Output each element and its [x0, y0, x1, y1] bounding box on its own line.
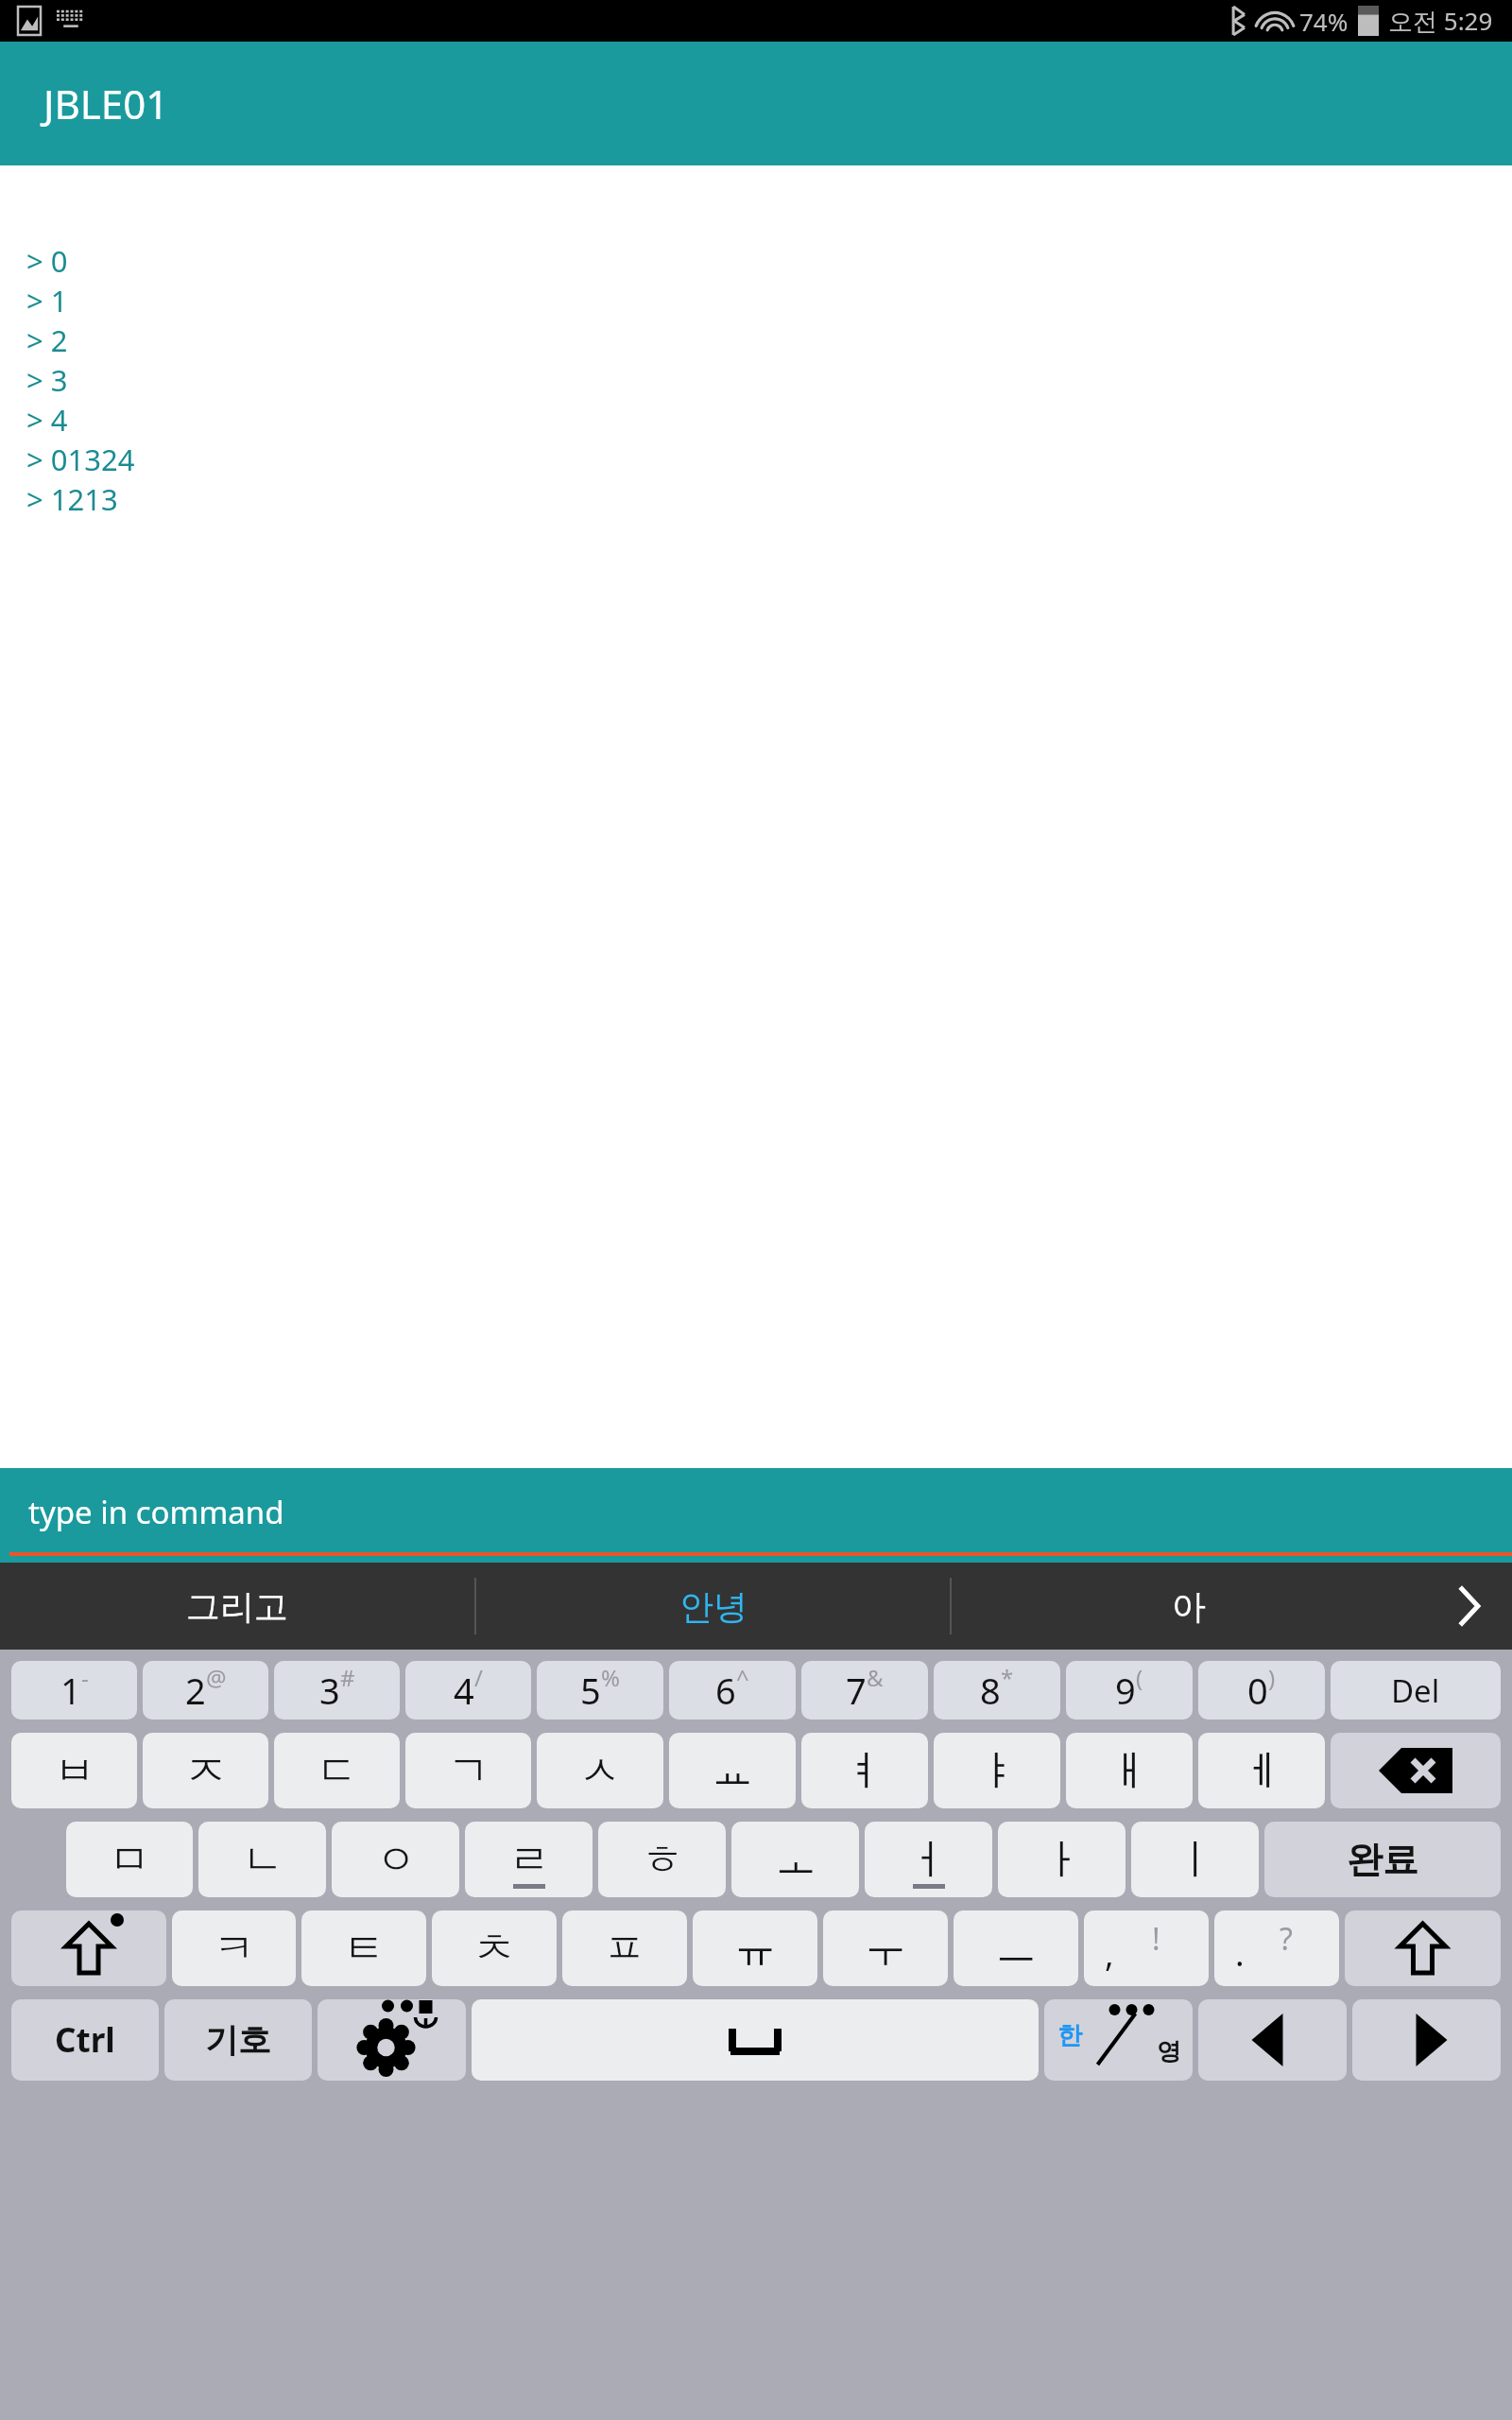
button[interactable]: Backspace — [1331, 1733, 1501, 1808]
staticText: ㅊ — [473, 1923, 515, 1975]
button[interactable]: 9 — [1066, 1661, 1193, 1720]
button[interactable]: 기호 — [164, 1999, 312, 2081]
button[interactable]: ㅎ — [598, 1822, 726, 1897]
staticText: 1 — [60, 1666, 81, 1715]
button[interactable]: ㅔ — [1198, 1733, 1325, 1808]
button[interactable]: Del — [1331, 1661, 1501, 1720]
staticText: ^ — [736, 1662, 749, 1693]
staticText: 2 — [185, 1666, 206, 1715]
staticText: 4 — [454, 1666, 474, 1715]
staticText: ㅂ — [54, 1745, 95, 1797]
button[interactable]: Shift — [1345, 1910, 1501, 1986]
staticText: ㅣ — [1175, 1834, 1216, 1886]
staticText: ! — [1152, 1918, 1160, 1960]
staticText: ㅎ — [642, 1834, 683, 1886]
staticText: 5 — [580, 1666, 601, 1715]
button[interactable]: ㄹ — [465, 1822, 593, 1897]
staticText: 아 — [1172, 1585, 1206, 1628]
button[interactable]: ㅠ — [693, 1910, 817, 1986]
staticText: 완료 — [1347, 1837, 1418, 1882]
staticText: ㄴ — [242, 1834, 283, 1886]
button[interactable]: ㅡ — [954, 1910, 1078, 1986]
staticText: 6 — [715, 1666, 736, 1715]
button[interactable]: 안녕 — [476, 1563, 950, 1650]
button[interactable]: ㅣ — [1131, 1822, 1259, 1897]
staticText: > 1 — [26, 281, 68, 320]
staticText: & — [867, 1662, 884, 1693]
button[interactable]: 6 — [669, 1661, 796, 1720]
button[interactable]: More suggestions — [1425, 1563, 1512, 1650]
button[interactable]: 8 — [934, 1661, 1060, 1720]
staticText: , — [1105, 1930, 1114, 1977]
staticText: 9 — [1115, 1666, 1136, 1715]
button[interactable]: Left — [1198, 1999, 1347, 2081]
staticText: . — [1235, 1930, 1245, 1977]
staticText: ㅁ — [109, 1834, 150, 1886]
staticText: ㅌ — [343, 1923, 385, 1975]
staticText: ㅅ — [579, 1745, 621, 1797]
button[interactable]: ㅗ — [731, 1822, 859, 1897]
button[interactable]: 0 — [1198, 1661, 1325, 1720]
button[interactable]: ㅐ — [1066, 1733, 1193, 1808]
button[interactable]: ! — [1084, 1910, 1209, 1986]
button[interactable]: 5 — [537, 1661, 663, 1720]
staticText: ㅜ — [865, 1923, 906, 1975]
button[interactable]: 2 — [143, 1661, 268, 1720]
button[interactable]: 7 — [801, 1661, 928, 1720]
button[interactable]: ㅛ — [669, 1733, 796, 1808]
button[interactable]: ㅕ — [801, 1733, 928, 1808]
button[interactable]: ㄷ — [274, 1733, 400, 1808]
staticText: Del — [1391, 1669, 1440, 1712]
button[interactable]: ㅈ — [143, 1733, 268, 1808]
staticText: ㅔ — [1241, 1745, 1282, 1797]
button[interactable]: ㅌ — [301, 1910, 426, 1986]
button[interactable]: ㄴ — [198, 1822, 326, 1897]
staticText: # — [340, 1662, 355, 1693]
button[interactable]: Ctrl — [11, 1999, 159, 2081]
staticText: 8 — [980, 1666, 1001, 1715]
button[interactable]: Shift lock — [11, 1910, 166, 1986]
staticText: > 2 — [26, 320, 68, 360]
staticText: ㅗ — [775, 1834, 816, 1886]
button[interactable]: Settings — [318, 1999, 466, 2081]
button[interactable]: ㅅ — [537, 1733, 663, 1808]
button[interactable]: ㅏ — [998, 1822, 1125, 1897]
button[interactable]: ㅋ — [172, 1910, 296, 1986]
button[interactable]: 완료 — [1264, 1822, 1501, 1897]
staticText: 74% — [1299, 5, 1349, 38]
button[interactable]: 1 — [11, 1661, 137, 1720]
button[interactable]: 3 — [274, 1661, 400, 1720]
staticText: 7 — [846, 1666, 867, 1715]
button[interactable]: ㅁ — [66, 1822, 193, 1897]
staticText: ? — [1280, 1918, 1293, 1960]
button[interactable]: 4 — [405, 1661, 531, 1720]
button[interactable]: 그리고 — [0, 1563, 474, 1650]
button[interactable]: ㅂ — [11, 1733, 137, 1808]
staticText: > 01324 — [26, 440, 135, 479]
staticText: ㅐ — [1108, 1745, 1150, 1797]
button[interactable]: Space — [472, 1999, 1039, 2081]
button[interactable]: Right — [1352, 1999, 1501, 2081]
button[interactable]: type in command — [0, 1468, 1512, 1563]
staticText: 한 — [1057, 2020, 1082, 2051]
button[interactable]: ㅓ — [865, 1822, 992, 1897]
button[interactable]: ? — [1214, 1910, 1339, 1986]
button[interactable]: Korean English toggle — [1044, 1999, 1193, 2081]
button[interactable]: ㅇ — [332, 1822, 459, 1897]
staticText: ㅕ — [844, 1745, 885, 1797]
staticText: 그리고 — [186, 1585, 288, 1628]
button[interactable]: ㅑ — [934, 1733, 1060, 1808]
staticText: ㄱ — [448, 1745, 490, 1797]
staticText: ㅛ — [712, 1745, 753, 1797]
button[interactable]: ㅜ — [823, 1910, 948, 1986]
button[interactable]: ㅍ — [562, 1910, 687, 1986]
button[interactable]: 아 — [952, 1563, 1425, 1650]
staticText: ) — [1268, 1662, 1276, 1693]
button[interactable]: ㄱ — [405, 1733, 531, 1808]
staticText: ㅍ — [604, 1923, 645, 1975]
staticText: > 4 — [26, 400, 68, 440]
staticText: 영 — [1157, 2036, 1181, 2067]
staticText: ㅏ — [1041, 1834, 1083, 1886]
staticText: > 1213 — [26, 479, 118, 519]
button[interactable]: ㅊ — [432, 1910, 557, 1986]
